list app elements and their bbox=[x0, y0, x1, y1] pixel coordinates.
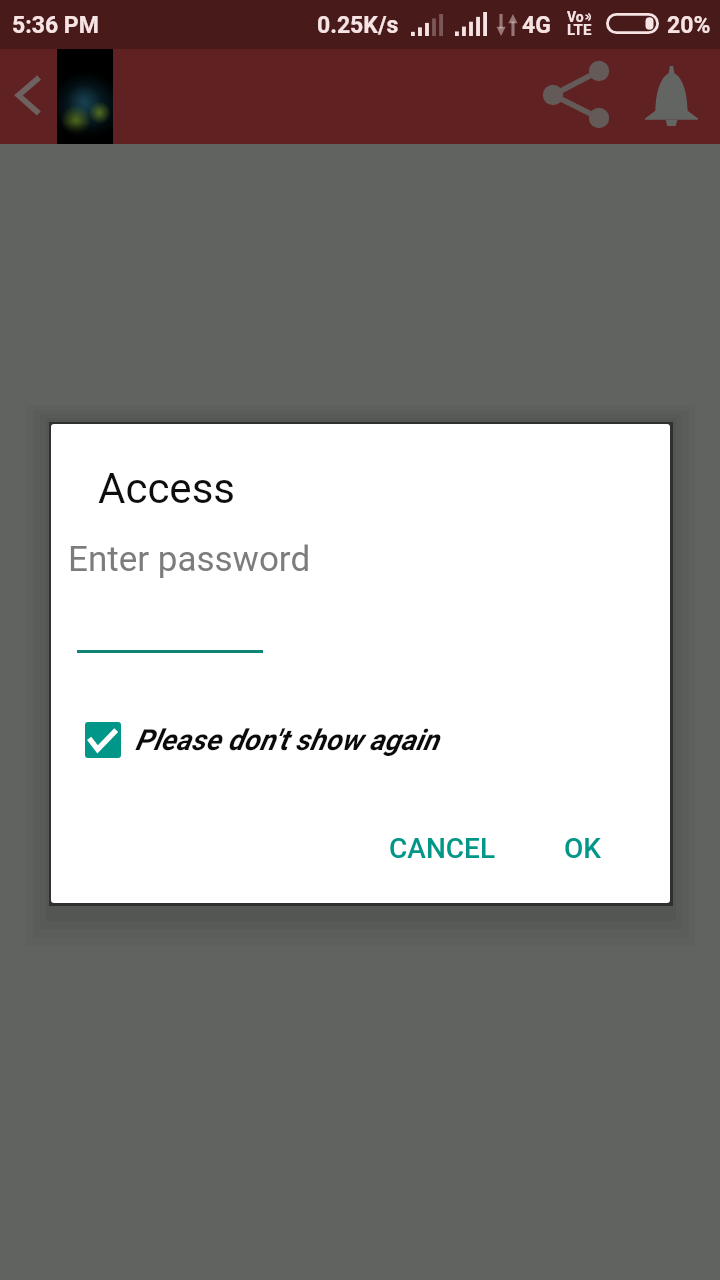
staticText: OK bbox=[564, 832, 601, 865]
staticText: 5:36 PM bbox=[12, 12, 99, 39]
staticText: LTE bbox=[567, 21, 592, 39]
button[interactable]: CANCEL bbox=[375, 815, 510, 881]
button[interactable]: OK bbox=[537, 815, 627, 881]
button[interactable]: Video thumbnail bbox=[57, 49, 113, 144]
staticText: Please don't show again bbox=[135, 723, 439, 757]
staticText: 0.25K/s bbox=[317, 12, 399, 39]
button[interactable]: Back bbox=[0, 49, 57, 144]
staticText: 20% bbox=[667, 12, 711, 39]
button[interactable]: Share bbox=[526, 49, 620, 144]
staticText: Enter password bbox=[68, 539, 311, 580]
button[interactable]: Please don't show again bbox=[85, 722, 439, 758]
staticText: Access bbox=[98, 464, 235, 513]
button[interactable]: Notifications bbox=[626, 49, 720, 144]
staticText: Vo bbox=[567, 9, 584, 25]
staticText: CANCEL bbox=[389, 832, 496, 865]
staticText: 4G bbox=[522, 12, 551, 39]
